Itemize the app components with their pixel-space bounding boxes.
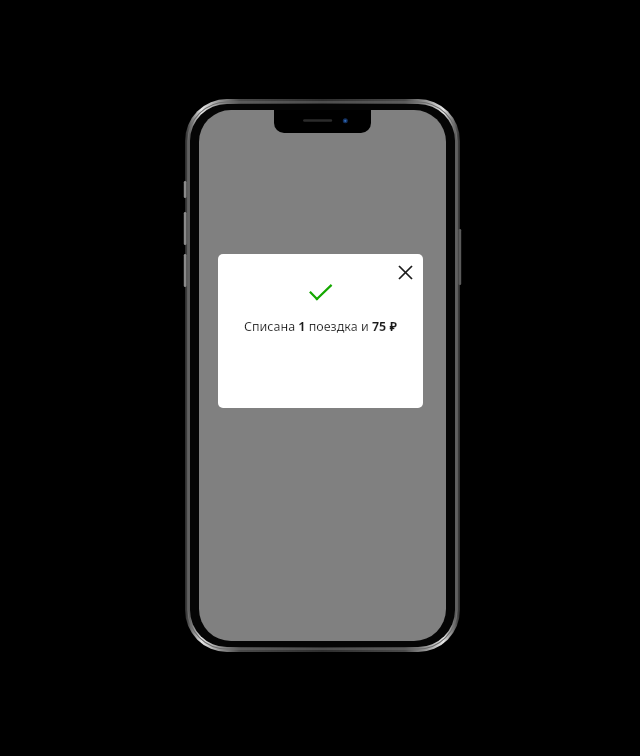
staticText: Списана 1 поездка и 75 ₽ (244, 318, 397, 335)
button[interactable]: Закрыть (390, 257, 420, 287)
